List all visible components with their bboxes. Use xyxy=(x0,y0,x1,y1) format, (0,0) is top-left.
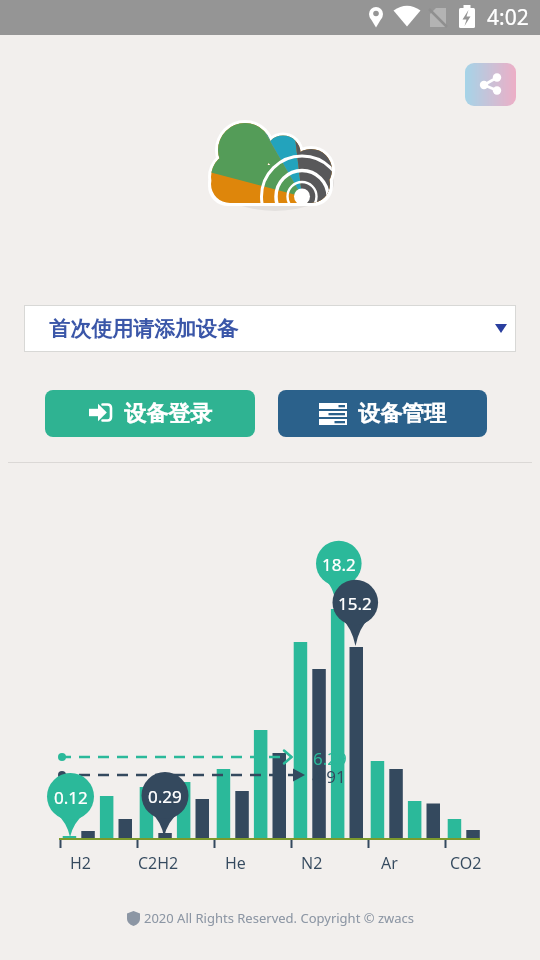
staticText: 4.91 xyxy=(312,765,346,788)
staticText: Ar xyxy=(381,852,398,874)
staticText: 15.2 xyxy=(338,592,372,615)
staticText: 首次使用请添加设备 xyxy=(49,316,238,342)
staticText: 设备登录 xyxy=(124,400,212,428)
button[interactable]: 首次使用请添加设备 xyxy=(24,305,516,352)
button[interactable]: 设备管理 xyxy=(278,390,487,437)
staticText: He xyxy=(225,852,246,874)
button[interactable] xyxy=(465,63,516,106)
staticText: 0.12 xyxy=(54,786,88,809)
staticText: C2H2 xyxy=(138,852,179,874)
button[interactable]: 设备登录 xyxy=(45,390,255,437)
staticText: 2020 All Rights Reserved. Copyright © zw… xyxy=(144,909,414,927)
staticText: H2 xyxy=(70,852,92,874)
staticText: 4:02 xyxy=(487,3,529,32)
staticText: N2 xyxy=(301,852,323,874)
staticText: 6.29 xyxy=(313,747,347,770)
staticText: CO2 xyxy=(450,852,482,874)
staticText: 0.29 xyxy=(148,785,182,808)
staticText: 设备管理 xyxy=(358,400,446,428)
staticText: 18.2 xyxy=(322,553,356,576)
